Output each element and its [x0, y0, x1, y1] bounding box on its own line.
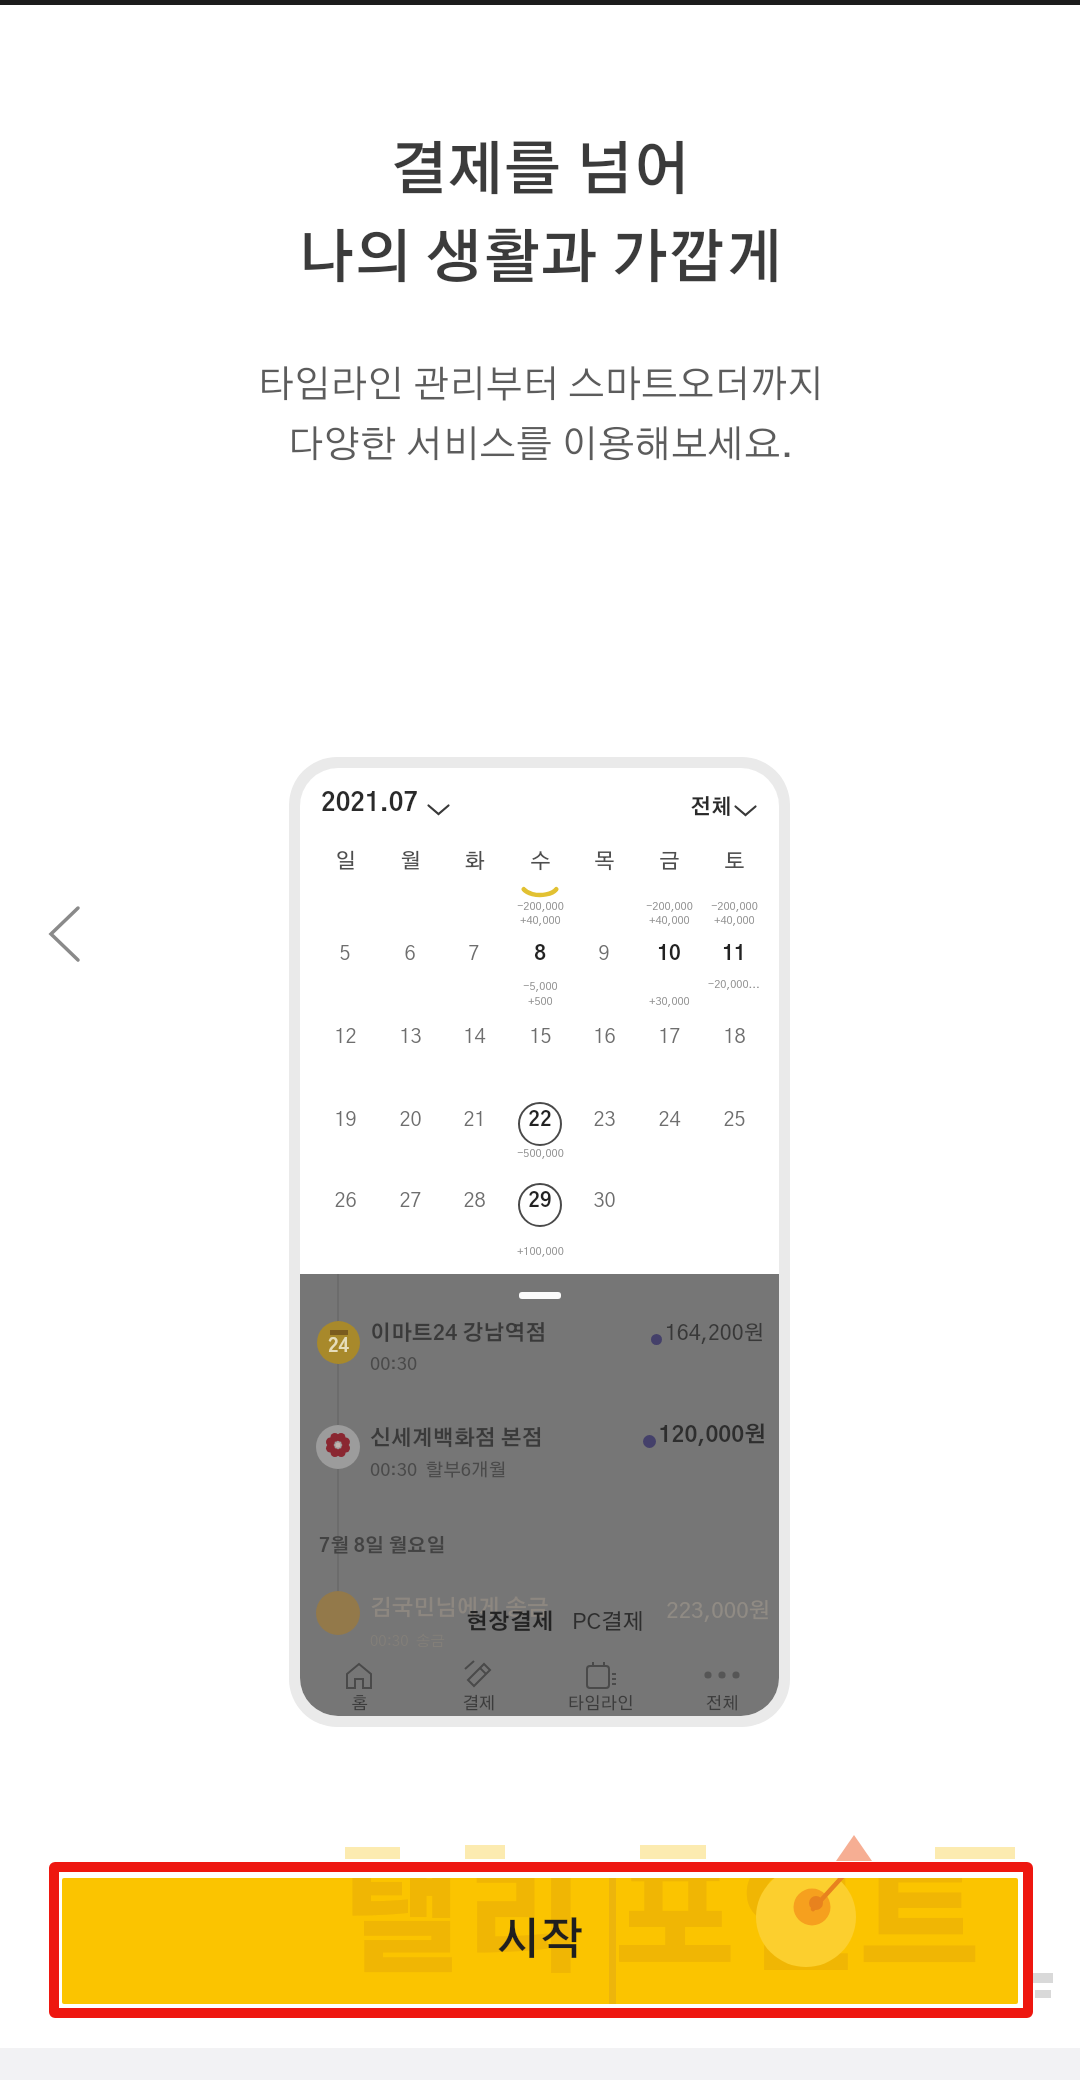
staticText: 화 [464, 851, 485, 872]
staticText: 김국민님에게 송금 [370, 1597, 549, 1619]
staticText: 23 [593, 1110, 616, 1130]
staticText: 24 [328, 1338, 350, 1356]
staticText: 29 [528, 1191, 552, 1211]
staticText: +40,000 [520, 915, 561, 926]
staticText: 26 [334, 1191, 357, 1211]
button[interactable]: 탤리 포인트 [62, 1878, 1018, 2004]
staticText: 9 [598, 944, 610, 964]
staticText: 11 [722, 944, 746, 964]
staticText: 7월 8일 월요일 [319, 1537, 446, 1556]
staticText: +30,000 [649, 996, 690, 1007]
staticText: 타임라인 [567, 1695, 634, 1712]
staticText: 00:30 할부6개월 [370, 1462, 507, 1480]
staticText: 수 [530, 851, 551, 872]
staticText: 27 [399, 1191, 422, 1211]
staticText: 전체 [690, 797, 732, 818]
staticText: 5 [339, 944, 351, 964]
staticText: 15 [529, 1027, 552, 1047]
staticText: 25 [723, 1110, 746, 1130]
staticText: 홈 [351, 1695, 368, 1712]
staticText: 타임라인 관리부터 스마트오더까지 다양한 서비스를 이용해보세요. [257, 367, 824, 465]
staticText: +100,000 [517, 1246, 564, 1257]
staticText: 21 [463, 1110, 486, 1130]
staticText: 14 [463, 1027, 486, 1047]
staticText: 탤리 포인트 [340, 1878, 982, 1986]
staticText: 24 [658, 1110, 681, 1130]
staticText: 2021.07 [321, 791, 419, 816]
button[interactable] [36, 893, 92, 975]
staticText: 22 [528, 1110, 552, 1130]
staticText: 12 [334, 1027, 357, 1047]
staticText: 전체 [705, 1695, 739, 1712]
staticText: -200,000 [711, 901, 758, 912]
staticText: -500,000 [517, 1148, 564, 1159]
staticText: 금 [659, 851, 680, 872]
staticText: 120,000원 [658, 1424, 766, 1446]
button[interactable] [344, 1661, 374, 1691]
staticText: +40,000 [714, 915, 755, 926]
staticText: 7 [468, 944, 480, 964]
staticText: 월 [400, 851, 421, 872]
staticText: 신세계백화점 본점 [370, 1428, 543, 1449]
staticText: 20 [399, 1110, 422, 1130]
staticText: 28 [463, 1191, 486, 1211]
staticText: 00:30 송금 [370, 1634, 445, 1649]
staticText: 토 [724, 851, 745, 872]
button[interactable] [463, 1659, 495, 1691]
staticText: +500 [528, 996, 553, 1007]
staticText: 10 [657, 944, 681, 964]
staticText: -200,000 [646, 901, 693, 912]
staticText: 현장결제 [466, 1611, 554, 1633]
staticText: 목 [594, 851, 615, 872]
button[interactable] [585, 1661, 617, 1693]
staticText: -5,000 [523, 981, 558, 992]
staticText: 13 [399, 1027, 422, 1047]
staticText: 223,000원 [666, 1600, 770, 1622]
staticText: 18 [723, 1027, 746, 1047]
staticText: 8 [534, 944, 546, 964]
staticText: +40,000 [649, 915, 690, 926]
staticText: 이마트24 강남역점 [370, 1323, 547, 1344]
staticText: 17 [658, 1027, 681, 1047]
staticText: PC결제 [572, 1611, 644, 1633]
staticText: 일 [335, 851, 356, 872]
staticText: 164,200원 [664, 1323, 764, 1344]
button[interactable] [704, 1668, 740, 1682]
staticText: 결제 [462, 1695, 496, 1712]
staticText: -20,000... [708, 979, 760, 990]
staticText: 6 [404, 944, 416, 964]
staticText: 30 [593, 1191, 616, 1211]
staticText: -200,000 [517, 901, 564, 912]
staticText: 16 [593, 1027, 616, 1047]
staticText: 00:30 [370, 1356, 418, 1374]
staticText: 19 [334, 1110, 357, 1130]
staticText: 결제를 넘어 나의 생활과 가깝게 [297, 143, 783, 289]
staticText: 시작 [497, 1919, 584, 1963]
